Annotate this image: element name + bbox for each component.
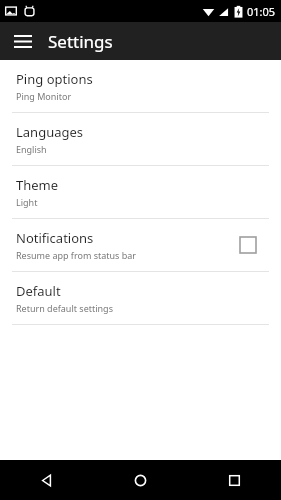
staticText: English — [16, 143, 47, 155]
button[interactable]: Home — [93, 460, 187, 500]
staticText: Default — [16, 282, 61, 300]
button[interactable]: Languages — [0, 113, 281, 165]
button[interactable]: Notifications — [0, 219, 281, 271]
staticText: Settings — [48, 30, 113, 53]
staticText: Theme — [16, 176, 59, 194]
button[interactable]: Default — [0, 272, 281, 324]
staticText: 01:05 — [247, 4, 276, 19]
button[interactable]: Notifications checkbox — [239, 236, 257, 254]
staticText: Ping Monitor — [16, 90, 72, 102]
button[interactable]: Recent apps — [187, 460, 281, 500]
staticText: Light — [16, 196, 38, 208]
staticText: Return default settings — [16, 302, 113, 314]
button[interactable]: Theme — [0, 166, 281, 218]
staticText: Resume app from status bar — [16, 249, 137, 261]
staticText: Notifications — [16, 229, 94, 247]
button[interactable]: Open navigation menu — [8, 26, 38, 56]
staticText: Languages — [16, 123, 84, 141]
staticText: Ping options — [16, 70, 93, 88]
button[interactable]: Ping options — [0, 60, 281, 112]
button[interactable]: Back — [0, 460, 93, 500]
